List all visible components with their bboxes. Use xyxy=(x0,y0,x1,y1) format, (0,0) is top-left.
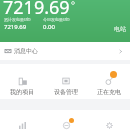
staticText: 今日发电量(度) xyxy=(43,17,70,22)
staticText: 7219.69 xyxy=(3,0,70,20)
staticText: 0.00 xyxy=(43,23,55,31)
staticText: 设备管理 xyxy=(54,88,78,96)
button[interactable]: Service xyxy=(44,110,87,130)
button[interactable]: 我的项目 xyxy=(0,64,44,99)
staticText: 7219.69 xyxy=(4,23,27,31)
button[interactable]: 设备管理 xyxy=(44,64,87,99)
button[interactable]: 正在充电 xyxy=(87,64,130,99)
staticText: 电站 xyxy=(114,25,126,33)
staticText: 我的项目 xyxy=(10,88,34,96)
staticText: 累计发电量(度) xyxy=(4,17,31,22)
staticText: 正在充电 xyxy=(97,88,121,96)
staticText: 消息中心 xyxy=(14,47,38,55)
button[interactable]: Settings xyxy=(87,110,130,130)
button[interactable]: Statistics xyxy=(0,110,44,130)
button[interactable]: 电站 xyxy=(114,25,126,33)
button[interactable]: 消息中心 xyxy=(0,42,130,60)
